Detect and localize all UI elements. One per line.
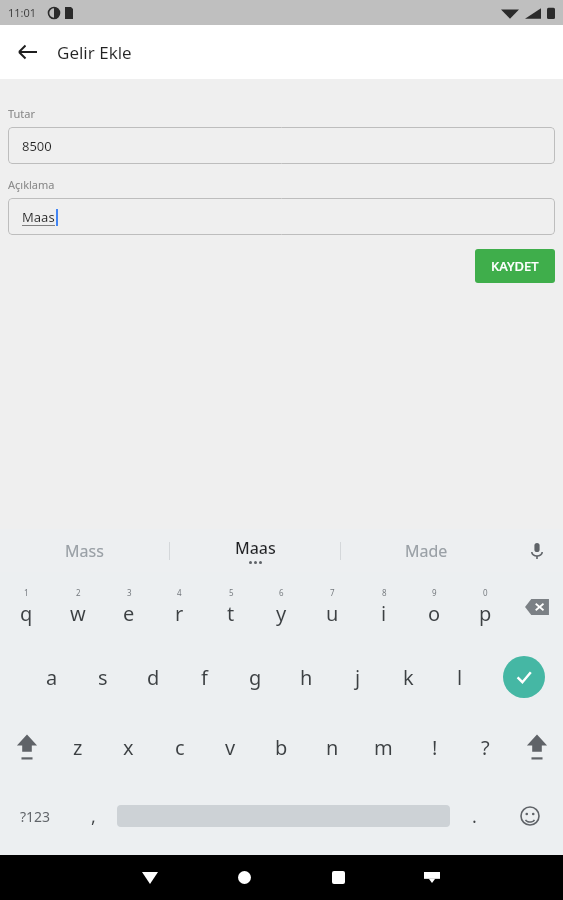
- staticText: b: [275, 734, 288, 761]
- button[interactable]: d: [128, 642, 179, 712]
- staticText: z: [73, 734, 83, 761]
- button[interactable]: 5: [205, 572, 256, 642]
- staticText: Maas: [22, 208, 55, 226]
- staticText: e: [123, 600, 135, 627]
- staticText: s: [98, 664, 108, 691]
- staticText: p: [479, 600, 492, 627]
- button[interactable]: s: [77, 642, 128, 712]
- staticText: Tutar: [8, 106, 36, 121]
- button[interactable]: n: [307, 712, 358, 782]
- button[interactable]: Shift: [1, 712, 52, 782]
- staticText: w: [70, 600, 86, 627]
- staticText: KAYDET: [491, 257, 539, 275]
- button[interactable]: ?123: [1, 782, 69, 850]
- button[interactable]: j: [332, 642, 383, 712]
- button[interactable]: b: [256, 712, 307, 782]
- staticText: Maas: [235, 537, 276, 559]
- button[interactable]: 1: [1, 572, 52, 642]
- button[interactable]: 8500: [8, 127, 555, 164]
- staticText: 0: [483, 587, 488, 598]
- staticText: x: [123, 734, 134, 761]
- staticText: ?123: [20, 807, 51, 826]
- staticText: t: [227, 600, 235, 627]
- button[interactable]: Hide keyboard: [103, 855, 197, 900]
- staticText: 1: [24, 587, 29, 598]
- staticText: Gelir Ekle: [57, 41, 132, 64]
- staticText: d: [147, 664, 160, 691]
- staticText: 2: [76, 587, 81, 598]
- staticText: 5: [229, 587, 234, 598]
- staticText: 9: [432, 587, 437, 598]
- button[interactable]: Recent apps: [291, 855, 385, 900]
- button[interactable]: KAYDET: [475, 249, 555, 283]
- button[interactable]: h: [281, 642, 332, 712]
- staticText: q: [20, 600, 33, 627]
- button[interactable]: Enter: [485, 642, 562, 712]
- button[interactable]: l: [434, 642, 485, 712]
- button[interactable]: Emoji: [498, 782, 562, 850]
- button[interactable]: Voice input: [511, 529, 563, 572]
- button[interactable]: m: [358, 712, 409, 782]
- button[interactable]: Back: [8, 32, 48, 72]
- staticText: y: [276, 600, 287, 627]
- staticText: 4: [177, 587, 182, 598]
- button[interactable]: ,: [69, 782, 117, 850]
- button[interactable]: 2: [52, 572, 103, 642]
- staticText: o: [428, 600, 441, 627]
- staticText: h: [300, 664, 313, 691]
- staticText: r: [175, 600, 184, 627]
- staticText: Açıklama: [8, 177, 55, 192]
- button[interactable]: Switch keyboard: [385, 855, 479, 900]
- button[interactable]: Home: [197, 855, 291, 900]
- staticText: Made: [405, 540, 448, 562]
- staticText: u: [326, 600, 339, 627]
- button[interactable]: !: [409, 712, 460, 782]
- button[interactable]: ?: [460, 712, 511, 782]
- button[interactable]: 4: [154, 572, 205, 642]
- button[interactable]: z: [52, 712, 103, 782]
- button[interactable]: a: [26, 642, 77, 712]
- button[interactable]: 9: [409, 572, 460, 642]
- staticText: Mass: [65, 540, 104, 562]
- staticText: ?: [481, 734, 490, 761]
- staticText: 8500: [22, 137, 52, 155]
- staticText: n: [326, 734, 339, 761]
- staticText: f: [201, 664, 208, 691]
- staticText: v: [225, 734, 236, 761]
- button[interactable]: Maas: [170, 529, 340, 572]
- staticText: j: [355, 664, 361, 691]
- button[interactable]: Space: [117, 782, 450, 850]
- button[interactable]: 8: [358, 572, 409, 642]
- staticText: m: [374, 734, 393, 761]
- button[interactable]: 0: [460, 572, 511, 642]
- button[interactable]: k: [383, 642, 434, 712]
- button[interactable]: x: [103, 712, 154, 782]
- staticText: .: [472, 804, 477, 829]
- button[interactable]: Backspace: [511, 572, 562, 642]
- staticText: 8: [382, 587, 387, 598]
- button[interactable]: Mass: [0, 529, 169, 572]
- button[interactable]: 6: [256, 572, 307, 642]
- button[interactable]: f: [179, 642, 230, 712]
- staticText: i: [381, 600, 387, 627]
- staticText: g: [249, 664, 262, 691]
- button[interactable]: 3: [103, 572, 154, 642]
- button[interactable]: v: [205, 712, 256, 782]
- staticText: !: [432, 734, 438, 761]
- staticText: k: [403, 664, 414, 691]
- staticText: 7: [330, 587, 335, 598]
- button[interactable]: g: [230, 642, 281, 712]
- button[interactable]: Maas: [8, 198, 555, 235]
- staticText: l: [457, 664, 463, 691]
- staticText: 3: [127, 587, 132, 598]
- staticText: a: [46, 664, 58, 691]
- staticText: ,: [91, 804, 96, 829]
- staticText: 6: [279, 587, 284, 598]
- staticText: c: [175, 734, 185, 761]
- button[interactable]: Shift: [511, 712, 562, 782]
- button[interactable]: .: [450, 782, 498, 850]
- staticText: 11:01: [8, 5, 37, 20]
- button[interactable]: c: [154, 712, 205, 782]
- button[interactable]: Made: [341, 529, 511, 572]
- button[interactable]: 7: [307, 572, 358, 642]
